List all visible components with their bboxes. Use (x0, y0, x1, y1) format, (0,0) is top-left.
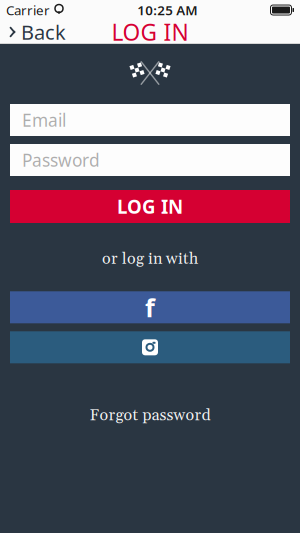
button[interactable]: Log in with Instagram (10, 331, 290, 363)
staticText: Back (21, 19, 66, 45)
staticText: Forgot password (89, 405, 210, 426)
button[interactable]: Email (10, 104, 290, 136)
staticText: 10:25 AM (137, 1, 197, 19)
staticText: Password (22, 148, 100, 171)
staticText: or log in with (102, 249, 198, 269)
button[interactable]: Back (0, 15, 66, 49)
button[interactable]: LOG IN (10, 190, 290, 223)
button[interactable]: Log in with Facebook (10, 291, 290, 323)
staticText: LOG IN (111, 17, 188, 47)
staticText: Carrier (6, 1, 50, 19)
staticText: LOG IN (117, 194, 183, 219)
staticText: f (145, 290, 155, 324)
staticText: Email (22, 108, 66, 131)
button[interactable]: Password (10, 144, 290, 176)
button[interactable]: Forgot password (77, 397, 222, 434)
